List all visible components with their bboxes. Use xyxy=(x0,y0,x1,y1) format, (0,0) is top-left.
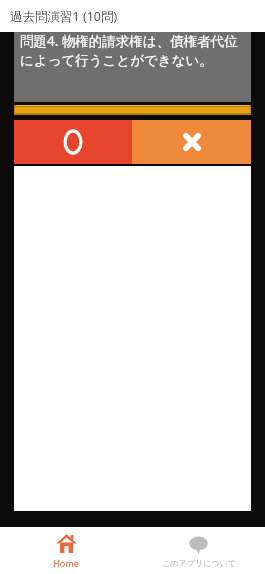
staticText: 問題4. 物権的請求権は、債権者代位によって行うことができない。 xyxy=(20,32,245,69)
staticText: 過去問演習1 (10問) xyxy=(10,8,118,25)
staticText: Home xyxy=(53,557,79,569)
button[interactable]: Home xyxy=(0,527,132,574)
button[interactable] xyxy=(14,120,132,164)
button[interactable]: このアプリについて xyxy=(132,527,265,574)
button[interactable] xyxy=(132,120,251,164)
staticText: このアプリについて xyxy=(162,558,236,568)
